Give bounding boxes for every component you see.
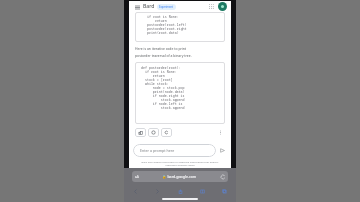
button[interactable]: Experiment — [159, 5, 174, 9]
staticText: return — [147, 18, 167, 22]
staticText: postorder traversal of a binary tree. — [135, 53, 192, 58]
staticText: def postorder(root): — [141, 65, 181, 69]
staticText: 🔒 bard.google.com — [162, 174, 197, 179]
button[interactable]: More options — [216, 128, 225, 137]
button[interactable]: Back — [131, 187, 140, 196]
button[interactable]: Tabs — [220, 187, 229, 196]
button[interactable]: Thumbs up — [135, 128, 146, 137]
staticText: Bard — [143, 3, 155, 10]
button[interactable]: ᴀA — [132, 171, 228, 182]
staticText: if node.right is — [141, 93, 185, 97]
staticText: stock.append — [141, 105, 185, 109]
staticText: Bard may display inaccurate or offensive… — [133, 160, 227, 163]
staticText: return — [141, 73, 165, 77]
staticText: stock.append — [141, 97, 185, 101]
staticText: postorder(root.left) — [147, 22, 187, 26]
staticText: if root is None: — [147, 14, 179, 18]
button[interactable]: Regenerate — [161, 128, 172, 137]
staticText: Experiment — [159, 5, 174, 9]
staticText: ᴀA — [135, 175, 139, 179]
staticText: stock = [root] — [141, 77, 173, 81]
staticText: if root is None: — [141, 69, 177, 73]
staticText: postorder(root.right — [147, 26, 187, 30]
staticText: if node.left is — [141, 101, 185, 105]
button[interactable]: Bookmarks — [198, 187, 207, 196]
staticText: while stock: — [141, 81, 169, 85]
button[interactable]: Account — [218, 2, 227, 11]
button[interactable]: Thumbs down — [148, 128, 159, 137]
staticText: print(root.data) — [147, 30, 179, 34]
staticText: print(node.data) — [141, 89, 185, 93]
staticText: represent Google's views — [133, 163, 227, 166]
button[interactable]: Google apps — [207, 2, 216, 11]
button[interactable]: Enter a prompt here — [133, 144, 216, 157]
button[interactable]: Forward — [153, 187, 162, 196]
button[interactable]: Send — [218, 146, 227, 155]
staticText: Here is an iterative code to print — [135, 46, 187, 51]
staticText: Enter a prompt here — [140, 148, 175, 153]
staticText: node = stock.pop — [141, 85, 185, 89]
button[interactable]: Menu — [133, 3, 141, 11]
button[interactable]: Share — [176, 187, 185, 196]
